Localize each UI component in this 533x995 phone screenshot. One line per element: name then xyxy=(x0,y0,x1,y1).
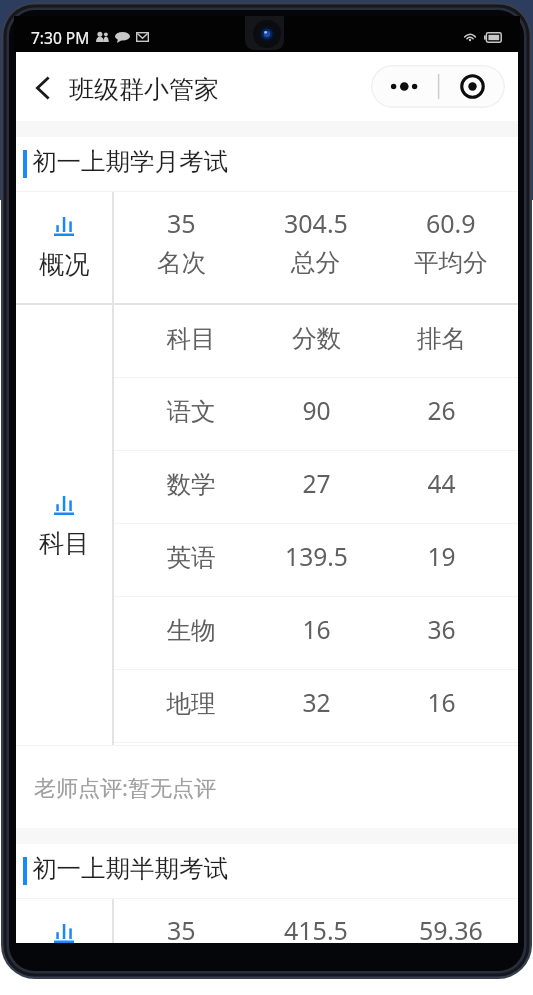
button[interactable]: 语文 xyxy=(128,378,504,450)
staticText: 语文 xyxy=(128,396,254,427)
staticText: 35 xyxy=(167,913,196,943)
staticText: 35 xyxy=(167,206,196,240)
staticText: 26 xyxy=(379,394,504,428)
button[interactable]: 概况 xyxy=(16,899,518,943)
staticText: 平均分 xyxy=(414,247,488,278)
staticText: 36 xyxy=(379,613,504,647)
staticText: 生物 xyxy=(128,615,254,646)
staticText: 19 xyxy=(379,540,504,574)
staticText: 分数 xyxy=(254,323,379,354)
staticText: 7:30 PM xyxy=(31,27,90,48)
button[interactable]: 生物 xyxy=(128,597,504,669)
button[interactable]: Back xyxy=(25,63,61,111)
staticText: 概况 xyxy=(39,249,90,281)
button[interactable]: 地理 xyxy=(128,670,504,742)
button[interactable]: 初一上期半期考试 xyxy=(16,844,518,898)
staticText: 304.5 xyxy=(284,206,348,240)
staticText: 初一上期半期考试 xyxy=(32,853,228,884)
staticText: 139.5 xyxy=(254,540,379,574)
staticText: 名次 xyxy=(157,247,206,278)
staticText: 415.5 xyxy=(284,913,348,943)
button[interactable]: 科目 xyxy=(128,305,504,377)
staticText: 排名 xyxy=(379,323,504,354)
staticText: 总分 xyxy=(291,247,340,278)
staticText: 16 xyxy=(254,613,379,647)
staticText: 44 xyxy=(379,467,504,501)
staticText: 初一上期学月考试 xyxy=(32,146,228,177)
staticText: 科目 xyxy=(128,323,254,354)
button[interactable]: 初一上期学月考试 xyxy=(16,137,518,191)
staticText: 60.9 xyxy=(426,206,476,240)
staticText: 老师点评:暂无点评 xyxy=(34,772,216,802)
staticText: 数学 xyxy=(128,469,254,500)
staticText: 科目 xyxy=(39,528,90,560)
staticText: 32 xyxy=(254,686,379,720)
button[interactable]: 英语 xyxy=(128,524,504,596)
staticText: 27 xyxy=(254,467,379,501)
button[interactable]: More options and close mini program xyxy=(371,65,505,108)
staticText: 英语 xyxy=(128,542,254,573)
button[interactable]: 数学 xyxy=(128,451,504,523)
staticText: 90 xyxy=(254,394,379,428)
staticText: 地理 xyxy=(128,688,254,719)
button[interactable]: 概况 xyxy=(16,192,518,303)
button[interactable]: 老师点评:暂无点评 xyxy=(16,746,518,828)
staticText: 16 xyxy=(379,686,504,720)
staticText: 班级群小管家 xyxy=(69,74,219,105)
staticText: 59.36 xyxy=(419,913,483,943)
